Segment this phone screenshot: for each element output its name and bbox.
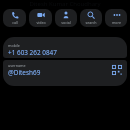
- staticText: video: [36, 20, 46, 25]
- button[interactable]: Video call: [29, 9, 52, 27]
- staticText: social: [61, 20, 71, 25]
- button[interactable]: Search: [80, 9, 102, 27]
- staticText: search: [85, 20, 97, 25]
- staticText: more: [112, 20, 121, 25]
- button[interactable]: mobile: [3, 37, 127, 58]
- other: QR code: [112, 65, 122, 75]
- button[interactable]: Social: [55, 9, 77, 27]
- button[interactable]: Call: [3, 9, 26, 27]
- button[interactable]: username: [3, 60, 127, 86]
- staticText: +1 603 262 0847: [8, 48, 57, 57]
- staticText: call: [12, 20, 18, 25]
- button[interactable]: More: [105, 9, 127, 27]
- staticText: mobile: [8, 43, 20, 48]
- staticText: @Ditesh69: [8, 68, 41, 77]
- staticText: username: [8, 63, 26, 68]
